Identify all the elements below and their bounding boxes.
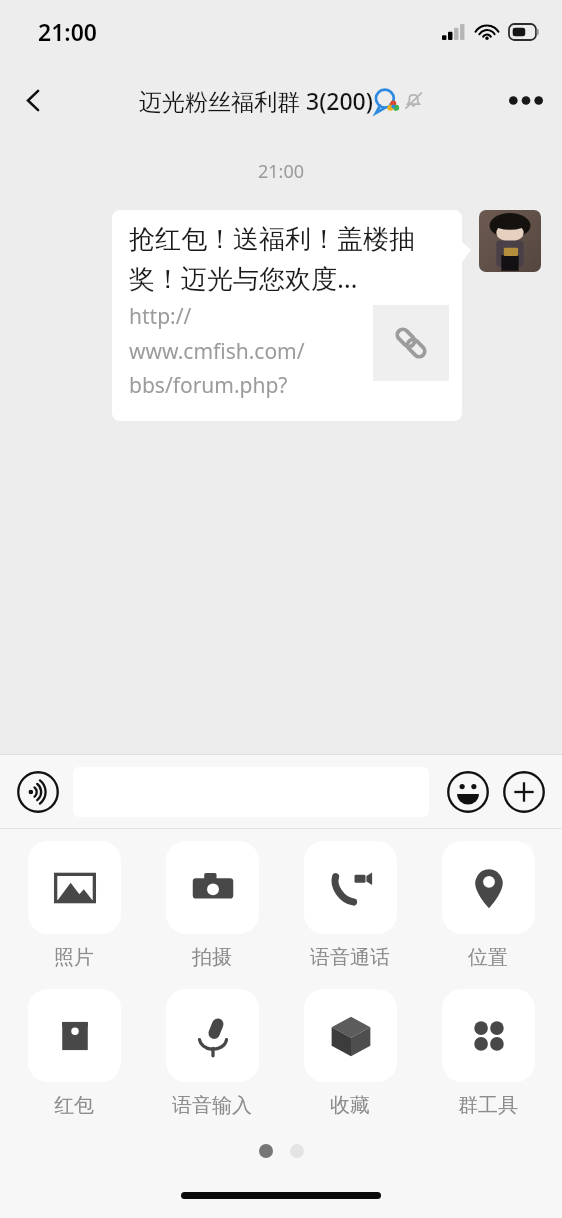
staticText: 21:00 — [0, 159, 562, 184]
button[interactable]: Avatar — [479, 210, 541, 272]
staticText: 语音通话 — [310, 945, 390, 970]
button[interactable]: 拍摄 — [162, 841, 262, 970]
staticText: 群工具 — [458, 1093, 518, 1118]
button[interactable]: 红包 — [24, 989, 124, 1118]
button[interactable]: 语音通话 — [300, 841, 400, 970]
staticText: 抢红包！送福利！盖楼抽奖！迈光与您欢度… — [129, 223, 449, 296]
staticText: 照片 — [54, 945, 94, 970]
button[interactable]: More actions — [501, 769, 547, 815]
button[interactable]: Back — [8, 75, 58, 125]
button[interactable]: 抢红包！送福利！盖楼抽奖！迈光与您欢度… — [112, 210, 462, 421]
button[interactable]: 位置 — [438, 841, 538, 970]
button[interactable]: Voice message — [15, 769, 61, 815]
staticText: http://www.cmfish.com/bbs/forum.php?mod=… — [129, 302, 334, 399]
button[interactable]: More options — [500, 74, 552, 126]
button[interactable]: 收藏 — [300, 989, 400, 1118]
staticText: 红包 — [54, 1093, 94, 1118]
staticText: 语音输入 — [172, 1093, 252, 1118]
button[interactable]: 群工具 — [438, 989, 538, 1118]
staticText: 迈光粉丝福利群 3(200) — [139, 85, 373, 116]
button[interactable]: Emoji — [445, 769, 491, 815]
staticText: 21:00 — [38, 16, 97, 47]
button[interactable]: 语音输入 — [162, 989, 262, 1118]
staticText: 位置 — [468, 945, 508, 970]
staticText: 拍摄 — [192, 945, 232, 970]
staticText: 收藏 — [330, 1093, 370, 1118]
button[interactable]: 照片 — [24, 841, 124, 970]
